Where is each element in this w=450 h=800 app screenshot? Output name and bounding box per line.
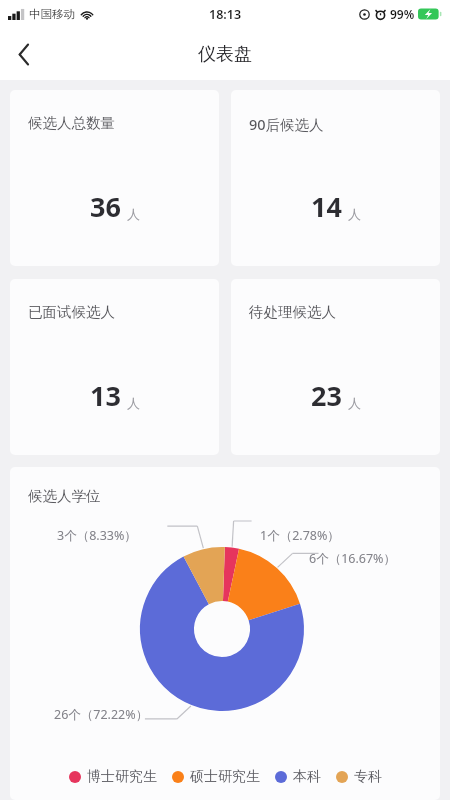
staticText: 人 [127,206,140,222]
staticText: 36 [90,188,121,225]
staticText: 14 [311,188,342,225]
button[interactable]: 已面试候选人 [10,279,219,455]
button[interactable]: 专科 [336,768,382,786]
staticText: 仪表盘 [198,43,252,66]
staticText: 23 [311,377,342,414]
staticText: 候选人学位 [28,487,101,505]
staticText: 博士研究生 [87,768,157,786]
staticText: 本科 [293,768,321,786]
staticText: 99% [390,6,415,22]
staticText: 3个（8.33%） [57,527,137,544]
staticText: 人 [348,395,361,411]
staticText: 待处理候选人 [249,303,336,321]
staticText: 候选人总数量 [28,114,115,132]
button[interactable]: 硕士研究生 [172,768,260,786]
button[interactable]: 本科 [275,768,321,786]
staticText: 硕士研究生 [190,768,260,786]
staticText: 人 [348,206,361,222]
staticText: 专科 [354,768,382,786]
staticText: 18:13 [209,6,242,23]
staticText: 已面试候选人 [28,303,115,321]
staticText: 26个（72.22%） [54,706,149,723]
button[interactable]: 待处理候选人 [231,279,440,455]
button[interactable]: 候选人总数量 [10,90,219,266]
staticText: 人 [127,395,140,411]
button[interactable]: Back [0,28,48,80]
button[interactable]: 博士研究生 [69,768,157,786]
staticText: 6个（16.67%） [309,550,396,567]
staticText: 13 [90,377,121,414]
staticText: 90后候选人 [249,114,324,134]
button[interactable]: 90后候选人 [231,90,440,266]
staticText: 中国移动 [29,7,75,21]
staticText: 1个（2.78%） [260,527,340,544]
